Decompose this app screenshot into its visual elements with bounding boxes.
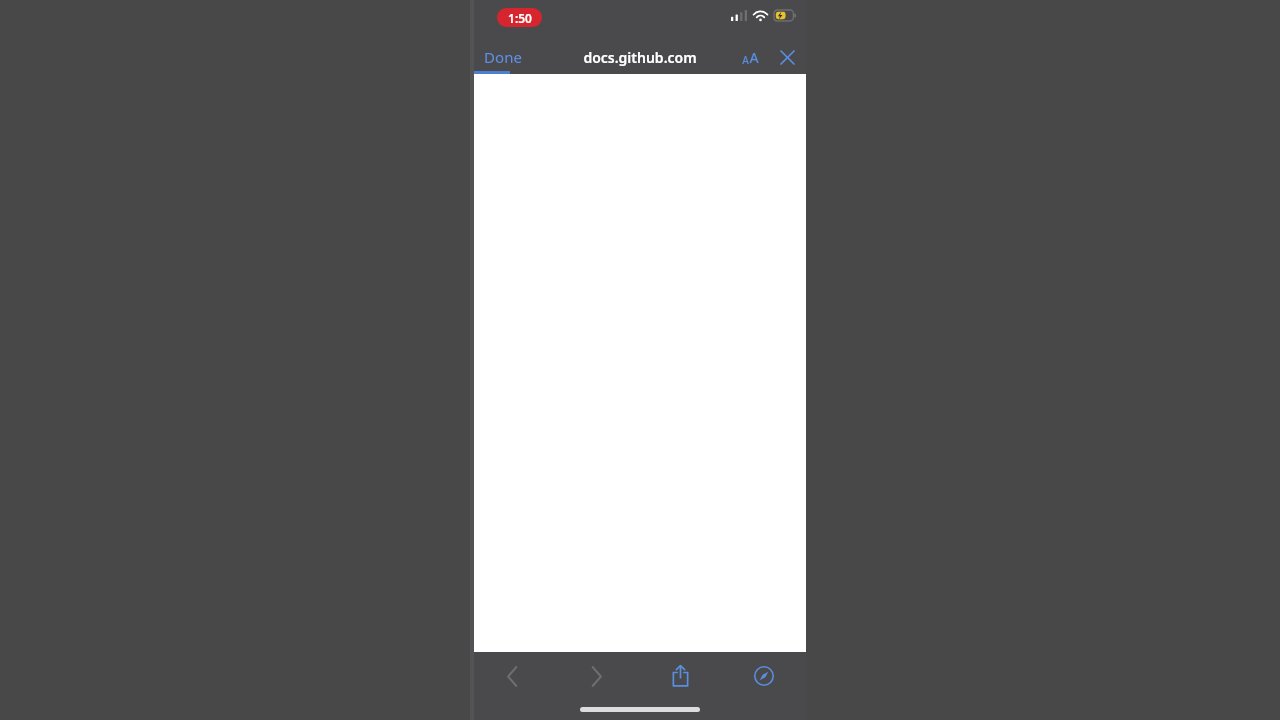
button[interactable]: Done: [474, 43, 532, 71]
staticText: A: [742, 53, 749, 67]
button[interactable]: Share: [638, 652, 722, 700]
button[interactable]: Close: [775, 45, 800, 70]
staticText: docs.github.com: [583, 48, 697, 67]
button[interactable]: Back: [470, 652, 554, 700]
button[interactable]: Text size options: [736, 44, 765, 71]
staticText: A: [749, 48, 759, 67]
staticText: Done: [484, 47, 522, 67]
staticText: 1:50: [508, 10, 532, 26]
button[interactable]: Open in Safari: [722, 652, 806, 700]
button[interactable]: Forward: [554, 652, 638, 700]
